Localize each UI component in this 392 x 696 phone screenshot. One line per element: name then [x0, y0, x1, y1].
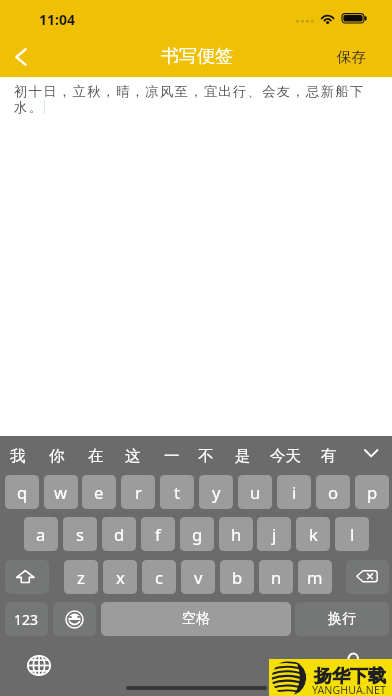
- button[interactable]: 今天: [264, 442, 307, 470]
- button[interactable]: p: [355, 475, 389, 509]
- staticText: YANGHUA.NET: [312, 683, 386, 696]
- staticText: w: [54, 481, 68, 504]
- button[interactable]: f: [141, 517, 175, 551]
- button[interactable]: Shift: [5, 560, 49, 594]
- staticText: 保存: [337, 48, 366, 66]
- button[interactable]: 空格: [101, 602, 291, 636]
- staticText: m: [307, 566, 323, 589]
- staticText: 你: [49, 446, 65, 466]
- button[interactable]: 保存: [323, 36, 392, 77]
- button[interactable]: 你: [43, 442, 71, 470]
- staticText: i: [292, 481, 297, 504]
- staticText: c: [155, 566, 163, 589]
- button[interactable]: Back: [0, 36, 42, 77]
- staticText: d: [114, 523, 125, 546]
- button[interactable]: 在: [82, 442, 110, 470]
- staticText: f: [155, 523, 161, 546]
- staticText: v: [194, 566, 203, 589]
- staticText: 扬华下载: [314, 665, 386, 688]
- button[interactable]: 一: [158, 442, 186, 470]
- button[interactable]: r: [121, 475, 155, 509]
- button[interactable]: Emoji: [53, 602, 96, 636]
- staticText: x: [116, 566, 125, 589]
- button[interactable]: q: [5, 475, 39, 509]
- button[interactable]: z: [64, 560, 98, 594]
- staticText: n: [271, 566, 282, 589]
- staticText: 初十日，立秋，晴，凉风至，宜出行、会友，忌新船下水。: [14, 83, 379, 116]
- staticText: y: [212, 481, 221, 504]
- button[interactable]: y: [199, 475, 233, 509]
- button[interactable]: a: [24, 517, 58, 551]
- button[interactable]: 换行: [295, 602, 389, 636]
- staticText: b: [232, 566, 243, 589]
- staticText: o: [328, 481, 339, 504]
- staticText: a: [36, 523, 46, 546]
- staticText: h: [231, 523, 242, 546]
- button[interactable]: n: [259, 560, 293, 594]
- button[interactable]: 这: [119, 442, 147, 470]
- button[interactable]: 我: [4, 442, 32, 470]
- staticText: 123: [14, 610, 39, 629]
- button[interactable]: c: [142, 560, 176, 594]
- button[interactable]: w: [44, 475, 78, 509]
- staticText: l: [350, 523, 355, 546]
- staticText: 在: [88, 446, 104, 466]
- button[interactable]: x: [103, 560, 137, 594]
- button[interactable]: s: [63, 517, 97, 551]
- button[interactable]: g: [180, 517, 214, 551]
- staticText: u: [250, 481, 261, 504]
- button[interactable]: Backspace: [346, 560, 389, 594]
- staticText: 不: [198, 446, 214, 466]
- staticText: 一: [164, 446, 180, 466]
- button[interactable]: 是: [229, 442, 257, 470]
- staticText: p: [367, 481, 378, 504]
- button[interactable]: k: [296, 517, 330, 551]
- staticText: q: [17, 481, 28, 504]
- staticText: 有: [321, 446, 337, 466]
- staticText: 换行: [328, 610, 356, 628]
- button[interactable]: 不: [192, 442, 220, 470]
- staticText: s: [76, 523, 84, 546]
- button[interactable]: e: [82, 475, 116, 509]
- button[interactable]: d: [102, 517, 136, 551]
- button[interactable]: u: [238, 475, 272, 509]
- button[interactable]: j: [257, 517, 291, 551]
- button[interactable]: More candidates: [354, 436, 388, 470]
- staticText: k: [309, 523, 318, 546]
- button[interactable]: 有: [315, 442, 343, 470]
- staticText: 书写便签: [161, 45, 233, 68]
- staticText: j: [272, 523, 277, 546]
- button[interactable]: b: [220, 560, 254, 594]
- button[interactable]: i: [277, 475, 311, 509]
- button[interactable]: 123: [5, 602, 48, 636]
- button[interactable]: t: [160, 475, 194, 509]
- button[interactable]: o: [316, 475, 350, 509]
- staticText: t: [174, 481, 180, 504]
- button[interactable]: h: [219, 517, 253, 551]
- staticText: 11:04: [39, 10, 75, 29]
- button[interactable]: v: [181, 560, 215, 594]
- button[interactable]: Switch input language: [24, 652, 53, 678]
- staticText: 我: [10, 446, 26, 466]
- staticText: 是: [235, 446, 251, 466]
- button[interactable]: m: [298, 560, 332, 594]
- staticText: 今天: [270, 446, 301, 466]
- button[interactable]: l: [335, 517, 369, 551]
- staticText: 这: [125, 446, 141, 466]
- staticText: 空格: [182, 610, 210, 628]
- staticText: g: [192, 523, 203, 546]
- staticText: e: [94, 481, 104, 504]
- staticText: z: [77, 566, 85, 589]
- staticText: r: [135, 481, 142, 504]
